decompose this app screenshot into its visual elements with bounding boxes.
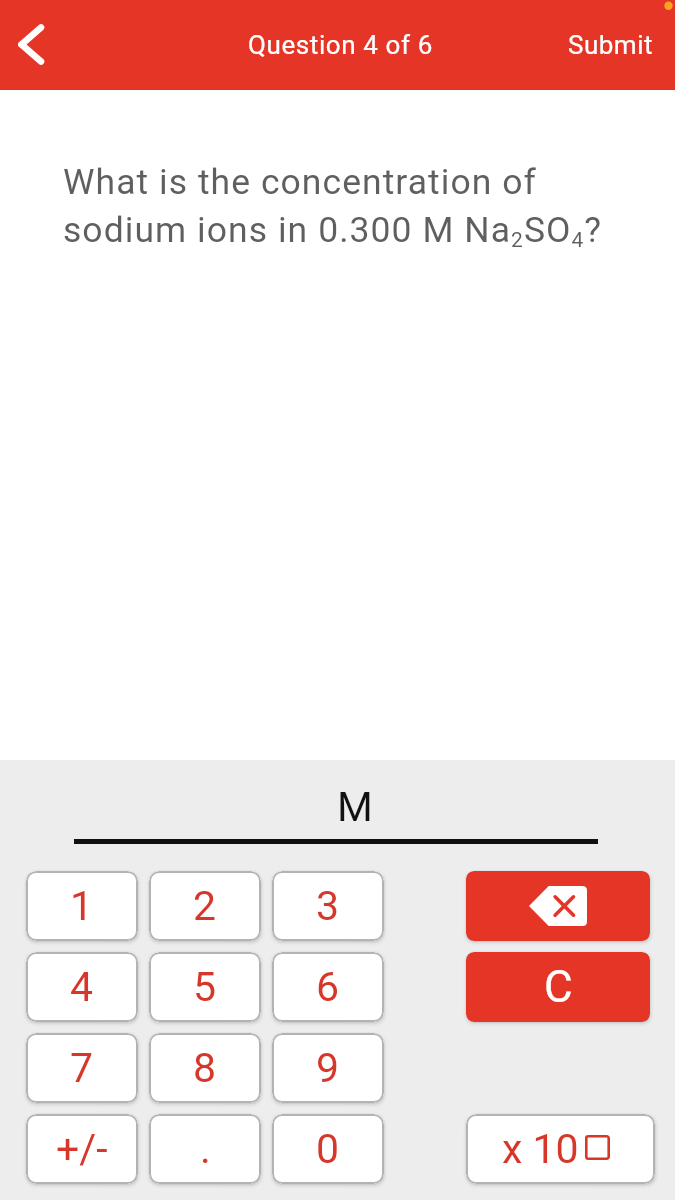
staticText: x 10	[502, 1125, 579, 1173]
staticText: .	[200, 1125, 211, 1173]
button[interactable]: Backspace	[466, 871, 650, 941]
staticText: +/-	[56, 1125, 108, 1173]
staticText: C	[544, 961, 573, 1013]
staticText: 1	[70, 882, 94, 930]
button[interactable]: 2	[149, 871, 261, 941]
staticText: 2	[193, 882, 217, 930]
button[interactable]: Back	[0, 0, 72, 90]
other: Backspace	[528, 885, 588, 927]
staticText: 3	[316, 882, 340, 930]
staticText: 4	[70, 963, 94, 1011]
staticText: Submit	[568, 30, 653, 60]
button[interactable]: 8	[149, 1033, 261, 1103]
staticText: M	[337, 783, 373, 831]
staticText: 5	[193, 963, 217, 1011]
button[interactable]: 9	[272, 1033, 384, 1103]
staticText: What is the concentration of sodium ions…	[63, 161, 623, 252]
button[interactable]: 5	[149, 952, 261, 1022]
staticText: Question 4 of 6	[248, 30, 433, 60]
button[interactable]: +/-	[26, 1114, 138, 1184]
button[interactable]: x 10	[466, 1114, 655, 1184]
staticText: 0	[316, 1125, 340, 1173]
button[interactable]: 4	[26, 952, 138, 1022]
staticText: 6	[316, 963, 340, 1011]
staticText: 7	[70, 1044, 94, 1092]
staticText: 9	[316, 1044, 340, 1092]
button[interactable]: 0	[272, 1114, 384, 1184]
button[interactable]: 7	[26, 1033, 138, 1103]
staticText: 8	[193, 1044, 217, 1092]
button[interactable]: 1	[26, 871, 138, 941]
button[interactable]: 6	[272, 952, 384, 1022]
button[interactable]: .	[149, 1114, 261, 1184]
button[interactable]: 3	[272, 871, 384, 941]
button[interactable]: Submit	[546, 18, 675, 72]
button[interactable]: Answer field	[74, 768, 598, 844]
button[interactable]: C	[466, 952, 650, 1022]
